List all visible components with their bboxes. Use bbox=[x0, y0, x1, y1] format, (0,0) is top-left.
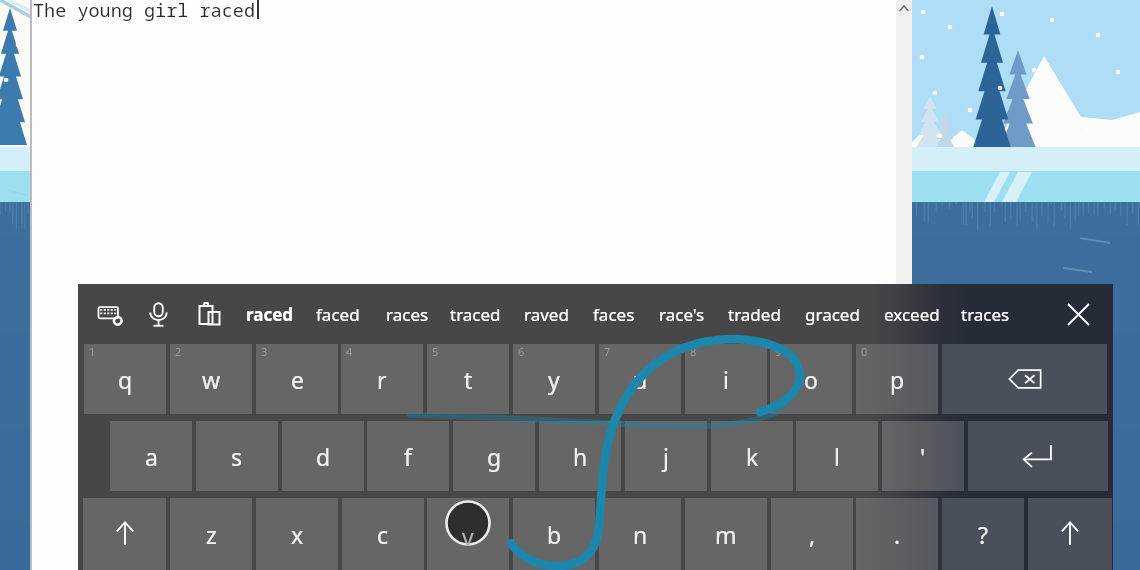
button[interactable]: race's bbox=[640, 284, 724, 344]
staticText: race's bbox=[659, 303, 705, 326]
button[interactable]: Backspace bbox=[942, 344, 1107, 414]
button[interactable]: k bbox=[711, 421, 793, 491]
staticText: 7 bbox=[604, 344, 611, 359]
button[interactable]: ' bbox=[882, 421, 964, 491]
button[interactable]: l bbox=[796, 421, 878, 491]
button[interactable]: faced bbox=[296, 284, 380, 344]
staticText: 0 bbox=[861, 344, 868, 359]
staticText: raced bbox=[246, 303, 294, 326]
staticText: exceed bbox=[884, 303, 940, 326]
button[interactable]: n bbox=[599, 498, 681, 570]
staticText: 5 bbox=[432, 344, 439, 359]
button[interactable]: . bbox=[856, 498, 938, 570]
button[interactable]: exceed bbox=[870, 284, 954, 344]
staticText: m bbox=[715, 519, 737, 550]
staticText: . bbox=[894, 519, 901, 550]
button[interactable]: 3 bbox=[256, 344, 338, 414]
staticText: z bbox=[206, 519, 217, 550]
button[interactable]: Clipboard bbox=[187, 284, 231, 344]
staticText: , bbox=[809, 519, 816, 550]
button[interactable]: m bbox=[685, 498, 767, 570]
button[interactable]: c bbox=[342, 498, 424, 570]
button[interactable]: 9 bbox=[770, 344, 852, 414]
staticText: 4 bbox=[346, 344, 353, 359]
staticText: e bbox=[291, 364, 304, 395]
button[interactable]: graced bbox=[790, 284, 874, 344]
staticText: j bbox=[663, 441, 669, 472]
button[interactable]: 4 bbox=[341, 344, 423, 414]
button[interactable]: Keyboard settings bbox=[88, 284, 132, 344]
staticText: u bbox=[633, 364, 648, 395]
button[interactable]: g bbox=[453, 421, 535, 491]
staticText: traces bbox=[961, 303, 1010, 326]
staticText: q bbox=[118, 364, 133, 395]
button[interactable]: v bbox=[427, 498, 509, 570]
staticText: traced bbox=[450, 303, 501, 326]
button[interactable]: 6 bbox=[513, 344, 595, 414]
staticText: races bbox=[386, 303, 429, 326]
staticText: c bbox=[377, 519, 389, 550]
staticText: ? bbox=[978, 519, 988, 550]
button[interactable]: ? bbox=[942, 498, 1024, 570]
button[interactable]: raved bbox=[504, 284, 588, 344]
button[interactable]: z bbox=[170, 498, 252, 570]
staticText: w bbox=[202, 364, 221, 395]
button[interactable]: faces bbox=[572, 284, 656, 344]
button[interactable]: 2 bbox=[170, 344, 252, 414]
button[interactable]: , bbox=[771, 498, 853, 570]
button[interactable]: 5 bbox=[427, 344, 509, 414]
button[interactable]: Shift bbox=[83, 498, 166, 570]
staticText: h bbox=[573, 441, 588, 472]
staticText: graced bbox=[805, 303, 860, 326]
staticText: 9 bbox=[775, 344, 782, 359]
button[interactable]: raced bbox=[228, 284, 312, 344]
button[interactable]: Shift bbox=[1028, 498, 1112, 570]
staticText: ' bbox=[920, 441, 926, 472]
staticText: x bbox=[291, 519, 304, 550]
staticText: o bbox=[804, 364, 818, 395]
button[interactable]: b bbox=[513, 498, 595, 570]
staticText: g bbox=[487, 441, 502, 472]
button[interactable]: f bbox=[367, 421, 449, 491]
staticText: faces bbox=[593, 303, 635, 326]
staticText: raved bbox=[524, 303, 569, 326]
button[interactable]: Enter bbox=[968, 421, 1108, 491]
staticText: faced bbox=[316, 303, 360, 326]
staticText: n bbox=[633, 519, 648, 550]
staticText: t bbox=[464, 364, 473, 395]
staticText: v bbox=[462, 521, 474, 552]
button[interactable]: races bbox=[365, 284, 449, 344]
staticText: traded bbox=[728, 303, 781, 326]
button[interactable]: s bbox=[196, 421, 278, 491]
staticText: 8 bbox=[690, 344, 697, 359]
button[interactable]: a bbox=[110, 421, 192, 491]
button[interactable]: 1 bbox=[84, 344, 166, 414]
staticText: The young girl raced bbox=[33, 0, 256, 22]
staticText: a bbox=[145, 441, 158, 472]
staticText: y bbox=[548, 364, 560, 395]
staticText: s bbox=[231, 441, 243, 472]
button[interactable]: traded bbox=[712, 284, 796, 344]
button[interactable]: x bbox=[256, 498, 338, 570]
button[interactable]: 0 bbox=[856, 344, 938, 414]
staticText: 2 bbox=[175, 344, 182, 359]
button[interactable]: traces bbox=[943, 284, 1027, 344]
staticText: l bbox=[834, 441, 840, 472]
staticText: d bbox=[316, 441, 331, 472]
staticText: p bbox=[890, 364, 905, 395]
staticText: i bbox=[723, 364, 729, 395]
staticText: b bbox=[547, 519, 562, 550]
button[interactable]: Close keyboard bbox=[1056, 292, 1100, 336]
button[interactable]: 7 bbox=[599, 344, 681, 414]
button[interactable]: traced bbox=[433, 284, 517, 344]
button[interactable]: h bbox=[539, 421, 621, 491]
staticText: 1 bbox=[89, 344, 96, 359]
staticText: k bbox=[746, 441, 759, 472]
button[interactable]: j bbox=[625, 421, 707, 491]
button[interactable]: Voice input bbox=[136, 284, 180, 344]
staticText: 6 bbox=[518, 344, 525, 359]
staticText: r bbox=[377, 364, 387, 395]
staticText: f bbox=[404, 441, 412, 472]
button[interactable]: d bbox=[282, 421, 364, 491]
button[interactable]: 8 bbox=[685, 344, 767, 414]
